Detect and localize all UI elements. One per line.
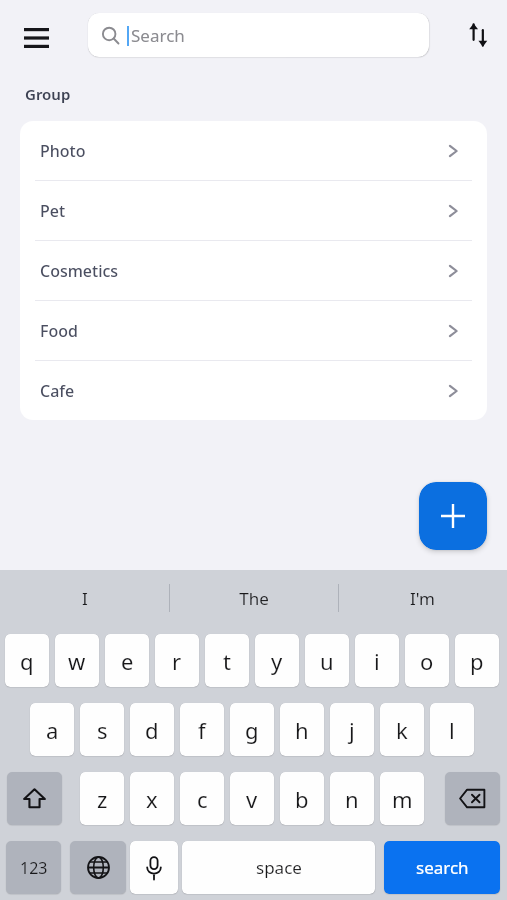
button[interactable]: a (30, 703, 74, 756)
button[interactable]: o (405, 634, 449, 687)
staticText: Food (40, 320, 78, 342)
button[interactable]: Cafe (20, 361, 487, 420)
staticText: search (416, 856, 469, 879)
staticText: w (68, 646, 86, 676)
staticText: Cosmetics (40, 260, 119, 282)
staticText: g (245, 715, 259, 745)
button[interactable]: u (305, 634, 349, 687)
button[interactable]: Sort (455, 12, 501, 58)
button[interactable]: l (430, 703, 474, 756)
staticText: b (295, 784, 309, 814)
button[interactable]: e (105, 634, 149, 687)
button[interactable]: w (55, 634, 99, 687)
staticText: space (256, 856, 302, 879)
button[interactable]: x (130, 772, 174, 825)
staticText: Pet (40, 200, 66, 222)
staticText: p (470, 646, 484, 676)
button[interactable]: z (80, 772, 124, 825)
staticText: Cafe (40, 380, 75, 402)
button[interactable]: Shift (7, 772, 62, 825)
staticText: Photo (40, 140, 86, 162)
staticText: n (345, 784, 359, 814)
button[interactable]: j (330, 703, 374, 756)
button[interactable]: The (169, 570, 338, 626)
staticText: The (239, 587, 269, 610)
button[interactable]: t (205, 634, 249, 687)
button[interactable]: Pet (20, 181, 487, 240)
button[interactable]: i (355, 634, 399, 687)
staticText: u (320, 646, 334, 676)
button[interactable]: d (130, 703, 174, 756)
staticText: Group (25, 84, 71, 104)
staticText: q (20, 646, 34, 676)
staticText: z (97, 784, 108, 814)
button[interactable]: Search (88, 13, 429, 57)
button[interactable]: r (155, 634, 199, 687)
staticText: l (449, 715, 455, 745)
button[interactable]: I'm (338, 570, 507, 626)
button[interactable]: p (455, 634, 499, 687)
button[interactable]: m (380, 772, 424, 825)
button[interactable]: I (0, 570, 169, 626)
staticText: Search (131, 24, 185, 47)
button[interactable]: k (380, 703, 424, 756)
button[interactable]: search (384, 841, 500, 894)
button[interactable]: c (180, 772, 224, 825)
staticText: o (420, 646, 434, 676)
button[interactable]: y (255, 634, 299, 687)
staticText: t (223, 646, 231, 676)
button[interactable]: v (230, 772, 274, 825)
staticText: e (121, 646, 134, 676)
staticText: I (82, 587, 88, 610)
staticText: y (271, 646, 283, 676)
button[interactable]: Food (20, 301, 487, 360)
staticText: k (396, 715, 408, 745)
staticText: j (349, 715, 355, 745)
staticText: v (246, 784, 258, 814)
button[interactable]: s (80, 703, 124, 756)
staticText: c (197, 784, 208, 814)
staticText: x (146, 784, 158, 814)
button[interactable]: q (5, 634, 49, 687)
button[interactable]: h (280, 703, 324, 756)
button[interactable]: Backspace (445, 772, 500, 825)
button[interactable]: g (230, 703, 274, 756)
button[interactable]: space (182, 841, 375, 894)
staticText: f (198, 715, 206, 745)
button[interactable]: Add (419, 482, 487, 550)
button[interactable]: f (180, 703, 224, 756)
staticText: d (145, 715, 159, 745)
staticText: h (295, 715, 309, 745)
button[interactable]: Menu (12, 14, 60, 62)
staticText: 123 (20, 857, 48, 879)
staticText: I'm (410, 587, 435, 610)
staticText: m (392, 784, 413, 814)
button[interactable]: n (330, 772, 374, 825)
button[interactable]: Cosmetics (20, 241, 487, 300)
staticText: s (97, 715, 108, 745)
staticText: i (374, 646, 380, 676)
button[interactable]: Photo (20, 121, 487, 180)
button[interactable]: 123 (6, 841, 61, 894)
button[interactable]: Change keyboard (70, 841, 126, 894)
staticText: r (172, 646, 182, 676)
staticText: a (46, 715, 59, 745)
button[interactable]: b (280, 772, 324, 825)
button[interactable]: Voice input (130, 841, 178, 894)
